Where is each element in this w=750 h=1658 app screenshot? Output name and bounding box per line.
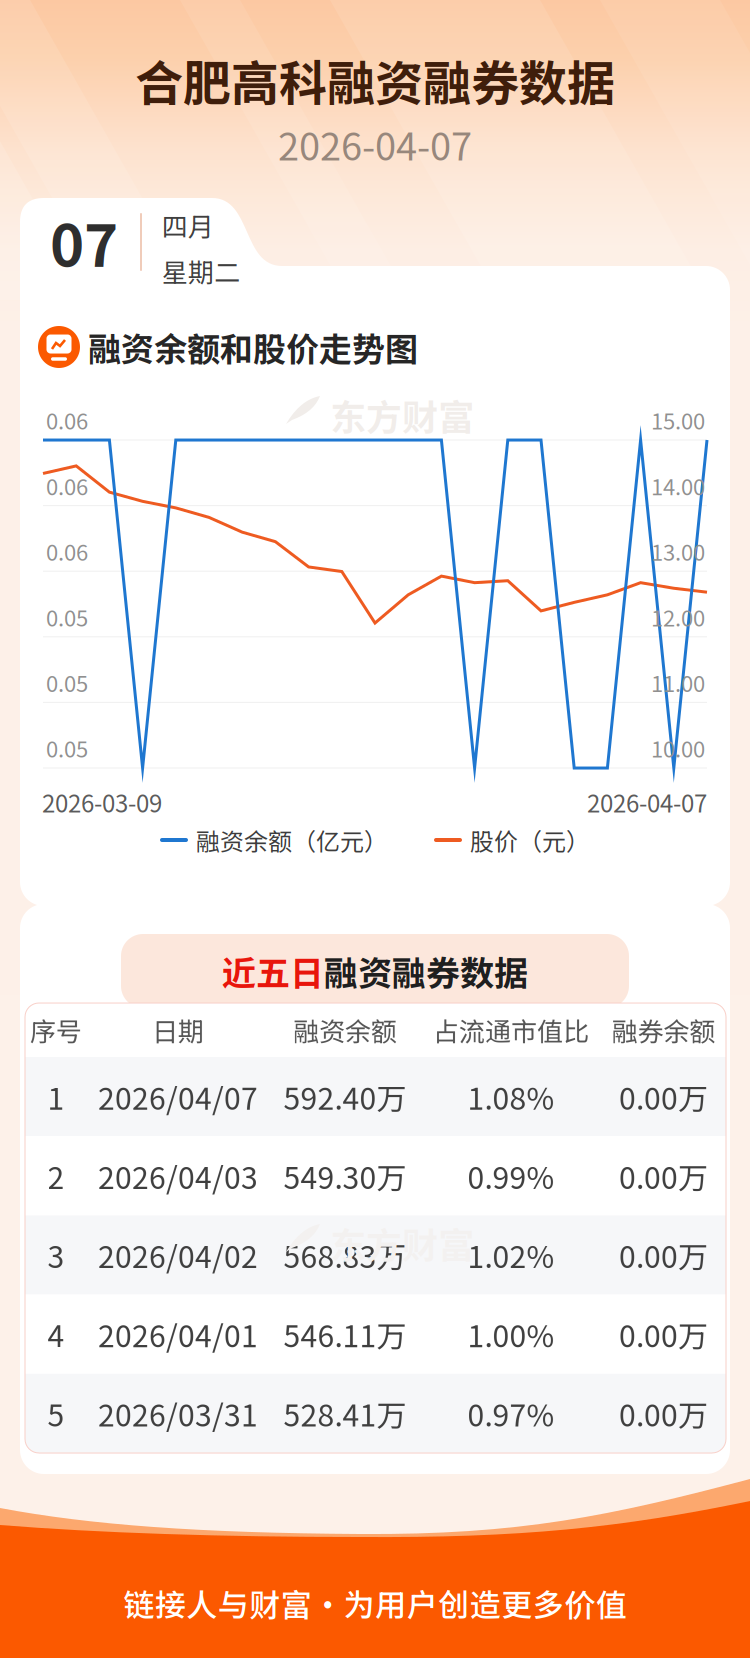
- staticText: 东方财富: [330, 1217, 474, 1269]
- staticText: 融券余额: [611, 1011, 715, 1049]
- staticText: 2026/04/03: [98, 1154, 258, 1197]
- staticText: 合肥高科融资融券数据: [135, 45, 615, 115]
- staticText: 1.08%: [467, 1075, 554, 1118]
- staticText: 13.00: [651, 535, 705, 567]
- staticText: 0.00万: [619, 1233, 708, 1277]
- staticText: 东方财富: [330, 389, 474, 441]
- staticText: 链接人与财富·为用户创造更多价值: [123, 1581, 627, 1625]
- staticText: 2026/04/01: [98, 1312, 258, 1356]
- staticText: 1.02%: [467, 1233, 554, 1277]
- staticText: 568.83万: [283, 1233, 406, 1277]
- staticText: 0.05: [46, 666, 88, 698]
- staticText: 2026/04/02: [98, 1233, 258, 1277]
- staticText: 0.99%: [467, 1154, 554, 1197]
- staticText: 2026/04/07: [98, 1075, 258, 1118]
- staticText: 0.06: [46, 404, 88, 436]
- staticText: 融资余额（亿元）: [196, 823, 388, 857]
- staticText: 股价（元）: [470, 823, 590, 857]
- staticText: 融资融券数据: [324, 946, 528, 996]
- staticText: 1: [47, 1075, 64, 1118]
- staticText: 2026/03/31: [98, 1392, 258, 1435]
- staticText: 1.00%: [467, 1312, 554, 1356]
- staticText: 4: [47, 1312, 64, 1356]
- staticText: 14.00: [651, 470, 705, 502]
- staticText: 546.11万: [283, 1312, 406, 1356]
- staticText: 序号: [30, 1011, 82, 1049]
- staticText: 0.06: [46, 470, 88, 502]
- staticText: 0.05: [46, 601, 88, 633]
- staticText: 0.06: [46, 535, 88, 567]
- staticText: 2: [47, 1154, 64, 1197]
- staticText: 2026-04-07: [587, 785, 707, 819]
- staticText: 2026-03-09: [42, 785, 162, 819]
- staticText: 0.00万: [619, 1392, 708, 1435]
- staticText: 0.97%: [467, 1392, 554, 1435]
- staticText: 07: [50, 200, 118, 284]
- staticText: 15.00: [651, 404, 705, 436]
- staticText: 融资余额: [293, 1011, 397, 1049]
- staticText: 11.00: [651, 666, 705, 698]
- staticText: 5: [47, 1392, 64, 1435]
- staticText: 0.05: [46, 732, 88, 764]
- staticText: 四月: [162, 206, 214, 244]
- staticText: 星期二: [162, 252, 240, 290]
- staticText: 528.41万: [283, 1392, 406, 1435]
- staticText: 549.30万: [283, 1154, 406, 1197]
- staticText: 592.40万: [283, 1075, 406, 1118]
- staticText: 0.00万: [619, 1312, 708, 1356]
- staticText: 12.00: [651, 601, 705, 633]
- staticText: 日期: [152, 1011, 204, 1049]
- staticText: 近五日: [222, 946, 324, 996]
- staticText: 10.00: [651, 732, 705, 764]
- staticText: 0.00万: [619, 1154, 708, 1197]
- staticText: 2026-04-07: [278, 116, 472, 171]
- staticText: 0.00万: [619, 1075, 708, 1118]
- staticText: 融资余额和股价走势图: [88, 323, 418, 371]
- staticText: 占流通市值比: [433, 1011, 589, 1049]
- staticText: 3: [47, 1233, 64, 1277]
